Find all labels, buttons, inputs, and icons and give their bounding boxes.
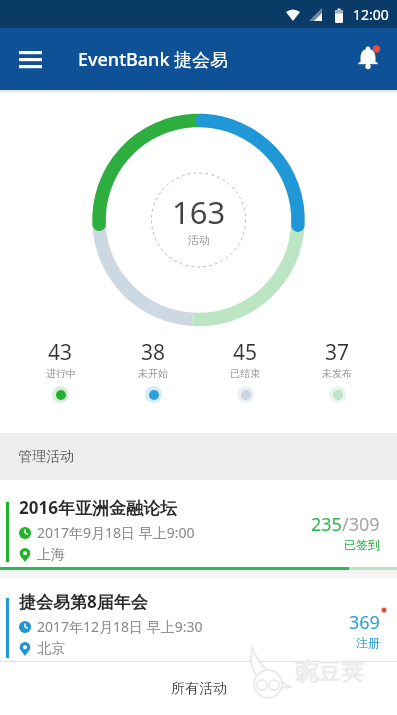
- staticText: 北京: [37, 640, 65, 658]
- staticText: 所有活动: [171, 680, 227, 698]
- staticText: 活动: [188, 233, 210, 247]
- staticText: 163: [172, 191, 226, 233]
- staticText: 2016年亚洲金融论坛: [19, 496, 177, 519]
- staticText: 上海: [37, 546, 65, 564]
- staticText: EventBank 捷会易: [78, 47, 229, 72]
- staticText: 43: [48, 338, 73, 367]
- staticText: 已签到: [344, 537, 380, 552]
- staticText: 管理活动: [18, 448, 74, 466]
- staticText: 369: [349, 610, 380, 635]
- staticText: 12:00: [353, 5, 389, 24]
- staticText: 豌豆荚: [295, 658, 364, 687]
- staticText: /309: [342, 512, 380, 537]
- staticText: 未发布: [322, 367, 352, 380]
- staticText: 37: [325, 338, 350, 367]
- button[interactable]: 所有活动: [0, 662, 397, 715]
- staticText: 2017年9月18日 早上9:00: [37, 523, 195, 542]
- staticText: 进行中: [46, 367, 76, 380]
- staticText: 注册: [356, 635, 380, 650]
- staticText: 已结束: [230, 367, 260, 380]
- staticText: 235: [311, 512, 342, 537]
- staticText: 38: [141, 338, 166, 367]
- button[interactable]: [350, 41, 386, 77]
- button[interactable]: [10, 39, 50, 79]
- staticText: 2017年12月18日 早上9:30: [37, 617, 203, 636]
- staticText: 捷会易第8届年会: [19, 590, 148, 613]
- button[interactable]: 2016年亚洲金融论坛: [0, 480, 397, 570]
- staticText: 45: [233, 338, 258, 367]
- button[interactable]: 37: [291, 338, 383, 403]
- staticText: 未开始: [138, 367, 168, 380]
- button[interactable]: 捷会易第8届年会: [0, 578, 397, 662]
- button[interactable]: 43: [14, 338, 107, 403]
- button[interactable]: 45: [199, 338, 291, 403]
- button[interactable]: 38: [107, 338, 199, 403]
